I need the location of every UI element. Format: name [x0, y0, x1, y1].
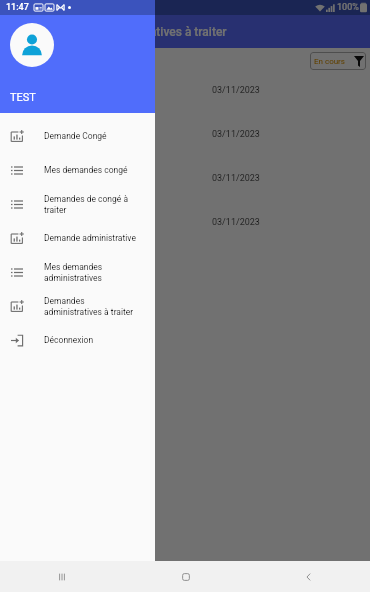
- staticText: Demande Congé: [44, 131, 140, 141]
- staticText: 03/11/2023: [212, 217, 260, 228]
- staticText: Demandes de congé à traiter: [44, 194, 140, 215]
- button[interactable]: Back: [247, 561, 370, 592]
- staticText: Déconnexion: [44, 335, 140, 345]
- button[interactable]: 03/11/2023: [5, 114, 365, 154]
- button[interactable]: Demandes de congé à traiter: [0, 187, 155, 221]
- staticText: 03/11/2023: [212, 85, 260, 96]
- staticText: 11:47: [6, 2, 29, 13]
- button[interactable]: 03/11/2023: [5, 202, 365, 242]
- staticText: Mes demandes congé: [44, 165, 140, 175]
- button[interactable]: [0, 0, 370, 592]
- button[interactable]: Open navigation menu: [8, 21, 30, 43]
- button[interactable]: 03/11/2023: [5, 70, 365, 110]
- button[interactable]: Demande administrative: [0, 221, 155, 255]
- button[interactable]: Déconnexion: [0, 323, 155, 357]
- staticText: 11:47: [6, 2, 29, 13]
- button[interactable]: Home: [124, 561, 247, 592]
- staticText: Demandes administratives à traiter: [44, 296, 140, 317]
- staticText: 100%: [337, 2, 359, 13]
- staticText: 03/11/2023: [212, 129, 260, 140]
- button[interactable]: 03/11/2023: [5, 158, 365, 198]
- button[interactable]: En cours: [310, 52, 366, 70]
- button[interactable]: Demande Congé: [0, 119, 155, 153]
- staticText: Demande administrative: [44, 233, 140, 243]
- button[interactable]: Mes demandes administratives: [0, 255, 155, 289]
- staticText: TEST: [10, 91, 36, 104]
- button[interactable]: Recent apps: [0, 561, 124, 592]
- button[interactable]: Demandes administratives à traiter: [0, 289, 155, 323]
- staticText: 03/11/2023: [212, 173, 260, 184]
- staticText: En cours: [314, 57, 345, 66]
- staticText: Mes demandes administratives: [44, 262, 140, 283]
- button[interactable]: Mes demandes congé: [0, 153, 155, 187]
- staticText: Demandes administratives à traiter: [39, 25, 227, 39]
